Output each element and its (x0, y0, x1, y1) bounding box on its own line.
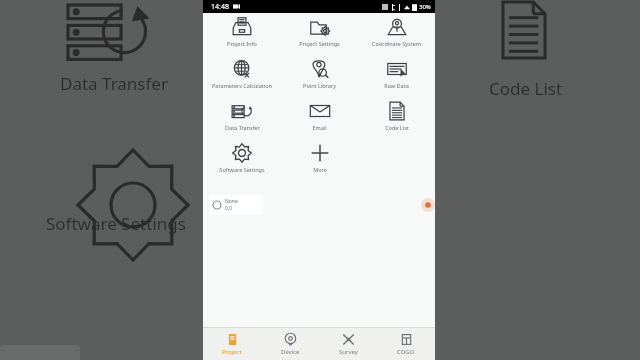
button[interactable]: Raw Data (358, 55, 435, 97)
staticText: Code List (385, 124, 409, 131)
staticText: None (225, 198, 238, 205)
button[interactable]: Code List (358, 97, 435, 139)
staticText: Software Settings (46, 212, 186, 235)
button[interactable]: COGO (377, 328, 435, 360)
button[interactable]: Email (281, 97, 358, 139)
staticText: Device (281, 348, 300, 356)
staticText: Code List (489, 77, 563, 100)
staticText: Survey (339, 348, 358, 356)
button[interactable]: Point Library (281, 55, 358, 97)
button[interactable]: Project (203, 328, 261, 360)
staticText: Raw Data (384, 82, 409, 89)
button[interactable]: Coordinate System (358, 13, 435, 55)
staticText: Parameters Calculation (212, 82, 272, 89)
staticText: More (313, 166, 327, 173)
staticText: COGO (397, 348, 415, 356)
button[interactable]: None (209, 195, 263, 215)
button[interactable]: Parameters Calculation (203, 55, 281, 97)
button[interactable]: Project Settings (281, 13, 358, 55)
staticText: Project Info (227, 40, 257, 47)
staticText: 30% (419, 3, 431, 11)
staticText: Coordinate System (372, 40, 421, 47)
button[interactable]: Data Transfer (203, 97, 281, 139)
staticText: 0.0 (225, 205, 233, 212)
staticText: Point Library (303, 82, 336, 89)
button[interactable]: More (281, 139, 358, 181)
button[interactable]: Survey (319, 328, 377, 360)
staticText: Project Settings (299, 40, 340, 47)
staticText: Email (312, 124, 327, 131)
staticText: Software Settings (219, 166, 265, 173)
staticText: Project (222, 348, 242, 356)
staticText: Data Transfer (60, 72, 168, 95)
staticText: 14:48 (211, 2, 229, 12)
button[interactable]: Device (261, 328, 319, 360)
staticText: Data Transfer (225, 124, 260, 131)
button[interactable]: Software Settings (203, 139, 281, 181)
button[interactable]: Project Info (203, 13, 281, 55)
